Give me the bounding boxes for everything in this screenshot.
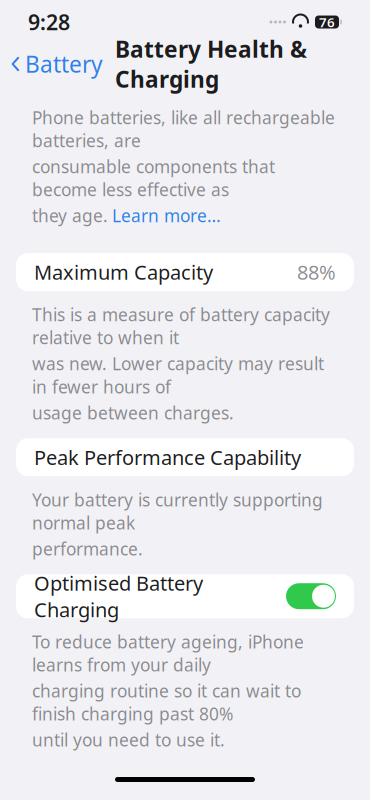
staticText: Learn more… <box>112 204 221 227</box>
staticText: usage between charges. <box>32 401 234 424</box>
button[interactable]: Learn more… <box>112 204 221 227</box>
staticText: until you need to use it. <box>32 728 225 751</box>
button[interactable]: Peak Performance Capability <box>16 438 354 476</box>
staticText: Your battery is currently supporting nor… <box>32 488 323 534</box>
button[interactable]: Maximum Capacity <box>16 253 354 291</box>
staticText: consumable components that become less e… <box>32 155 275 201</box>
staticText: Battery Health & Charging <box>115 34 307 94</box>
button[interactable]: Optimised Battery Charging <box>16 574 354 618</box>
staticText: Optimised Battery Charging <box>34 570 203 623</box>
staticText: Battery <box>25 49 103 79</box>
staticText: 88% <box>297 259 336 285</box>
staticText: 76 <box>319 13 335 31</box>
staticText: Peak Performance Capability <box>34 444 301 470</box>
staticText: charging routine so it can wait to finis… <box>32 679 301 725</box>
staticText: Phone batteries, like all rechargeable b… <box>32 106 335 152</box>
staticText: To reduce battery ageing, iPhone learns … <box>32 630 304 676</box>
staticText: 9:28 <box>28 8 70 36</box>
staticText: they age. <box>32 204 108 227</box>
staticText: performance. <box>32 537 143 560</box>
staticText: Maximum Capacity <box>34 259 213 285</box>
button[interactable]: Battery <box>0 43 103 85</box>
staticText: This is a measure of battery capacity re… <box>32 303 330 349</box>
staticText: was new. Lower capacity may result in fe… <box>32 352 324 398</box>
